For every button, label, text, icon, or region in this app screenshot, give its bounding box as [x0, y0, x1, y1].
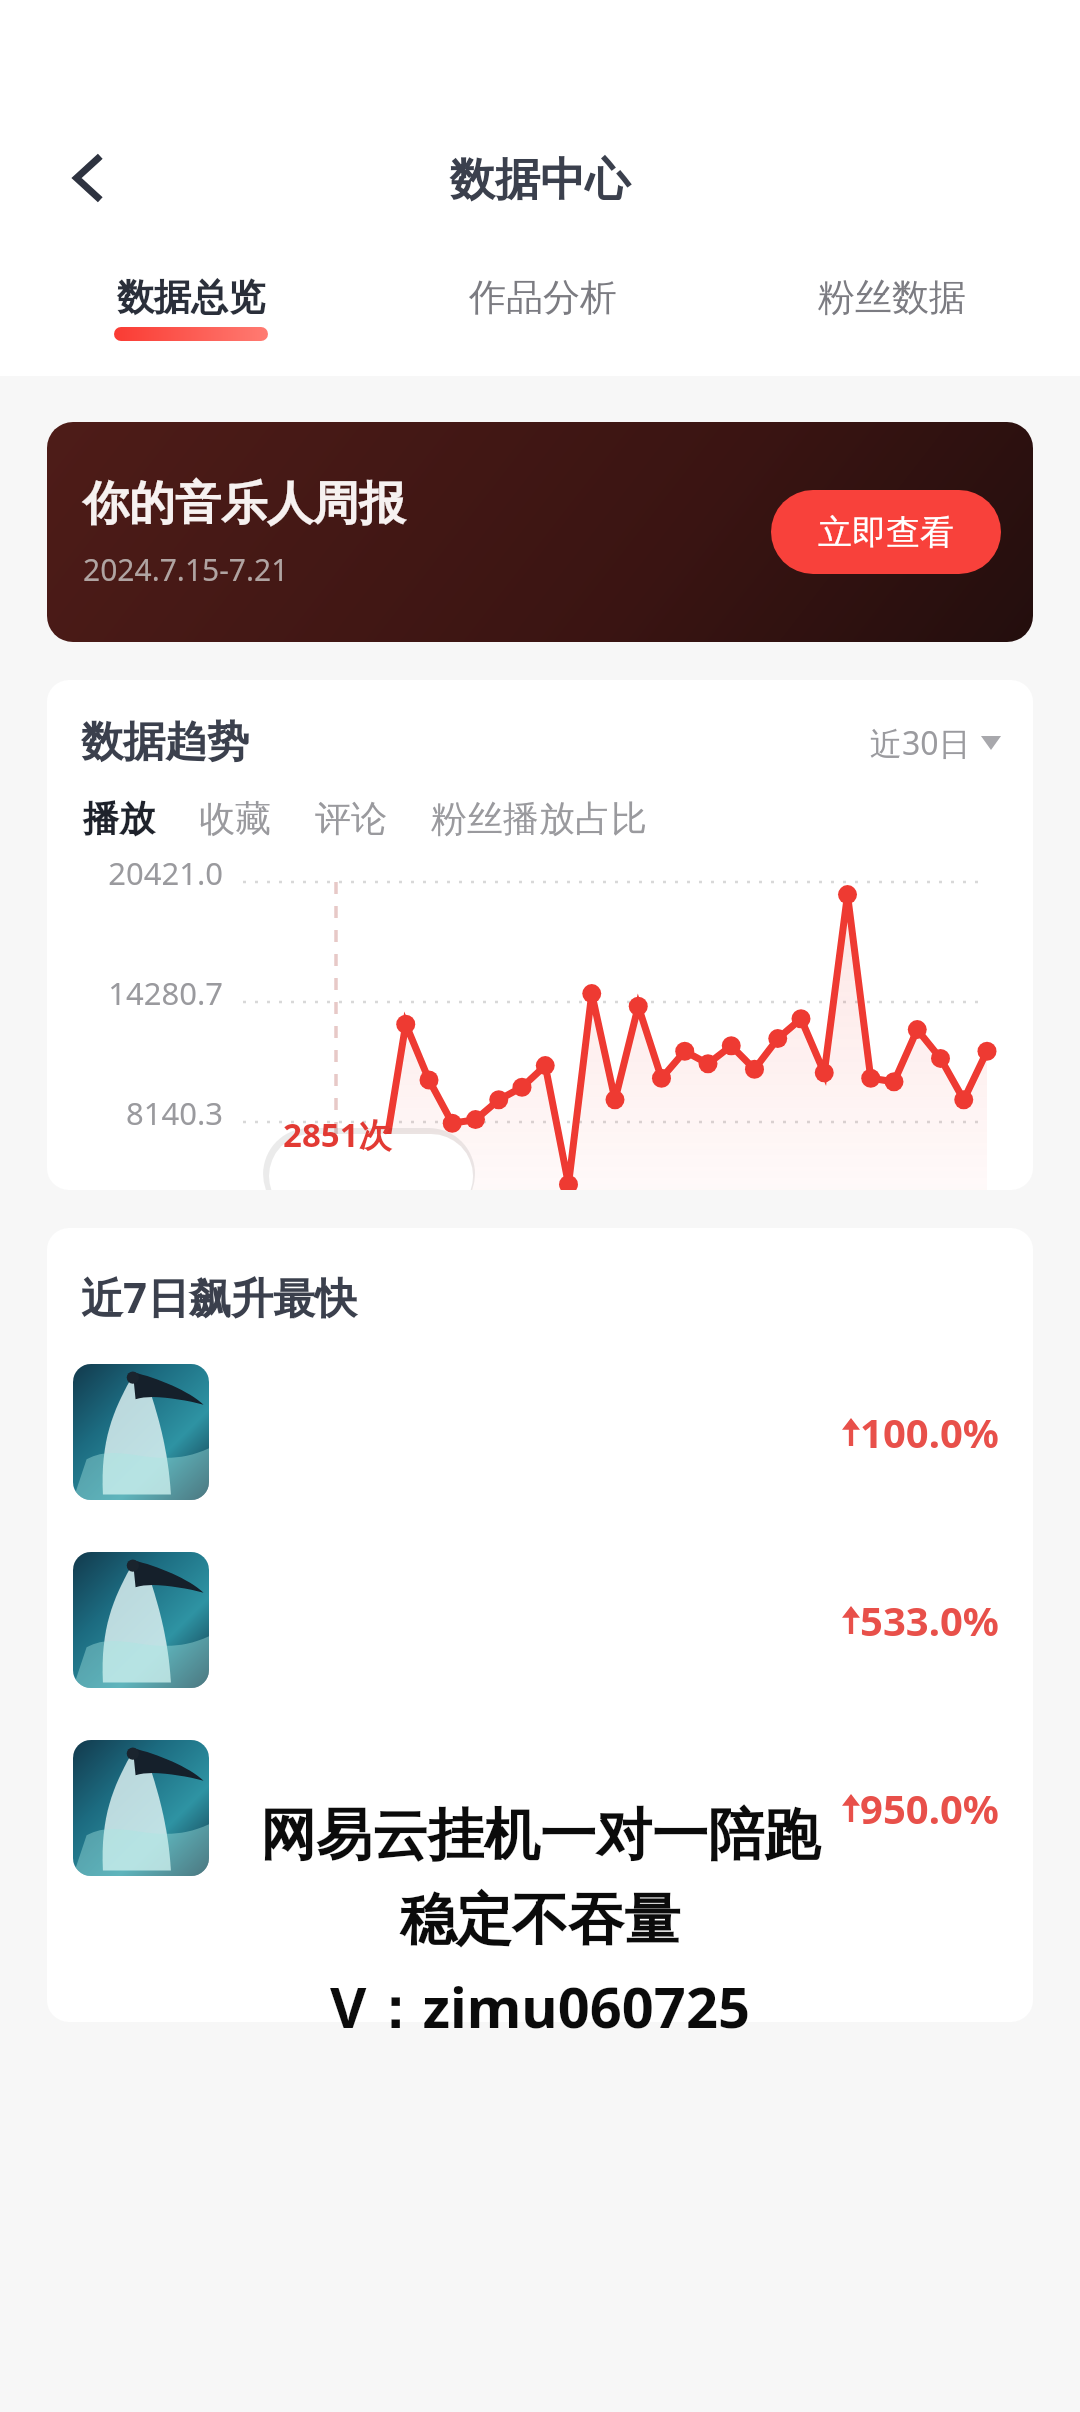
button[interactable]: 收藏 [197, 794, 273, 843]
button[interactable]: 作品分析 [463, 272, 623, 343]
staticText: 评论 [315, 796, 387, 841]
button[interactable]: 近30日 [866, 717, 1005, 769]
staticText: 20421.0 [47, 852, 223, 894]
staticText: 你的音乐人周报 [83, 475, 405, 533]
button[interactable]: 播放 [81, 794, 157, 843]
staticText: 近7日飙升最快 [81, 1268, 358, 1325]
staticText: 数据趋势 [81, 716, 249, 769]
staticText: 粉丝播放占比 [431, 796, 647, 841]
staticText: 533.0% [860, 1593, 999, 1647]
staticText: V：zimu060725 [330, 1968, 750, 2044]
staticText: 100.0% [860, 1405, 999, 1459]
staticText: 网易云挂机一对一陪跑 [260, 1800, 820, 1871]
staticText: 2851次 [283, 1112, 392, 1157]
staticText: 播放 [83, 796, 155, 841]
button[interactable]: 数据总览 [108, 272, 274, 343]
staticText: 数据总览 [117, 274, 265, 321]
staticText: 8140.3 [47, 1092, 223, 1134]
staticText: 2024.7.15-7.21 [83, 549, 289, 590]
staticText: 立即查看 [818, 511, 954, 554]
staticText: 950.0% [860, 1781, 999, 1835]
button[interactable]: 粉丝播放占比 [429, 794, 649, 843]
staticText: 数据中心 [450, 152, 630, 209]
staticText: 收藏 [199, 796, 271, 841]
button[interactable]: 950.0% [47, 1732, 1033, 1884]
button[interactable]: 粉丝数据 [812, 272, 972, 343]
button[interactable]: 533.0% [47, 1544, 1033, 1696]
staticText: 14280.7 [47, 972, 223, 1014]
staticText: 作品分析 [469, 274, 617, 321]
button[interactable]: 100.0% [47, 1356, 1033, 1508]
staticText: 稳定不吞量 [400, 1885, 680, 1956]
button[interactable]: Back [50, 140, 126, 216]
button[interactable]: 评论 [313, 794, 389, 843]
button[interactable]: 立即查看 [771, 490, 1001, 574]
button[interactable]: 你的音乐人周报 [47, 422, 1033, 642]
staticText: 近30日 [870, 721, 971, 765]
staticText: 粉丝数据 [818, 274, 966, 321]
